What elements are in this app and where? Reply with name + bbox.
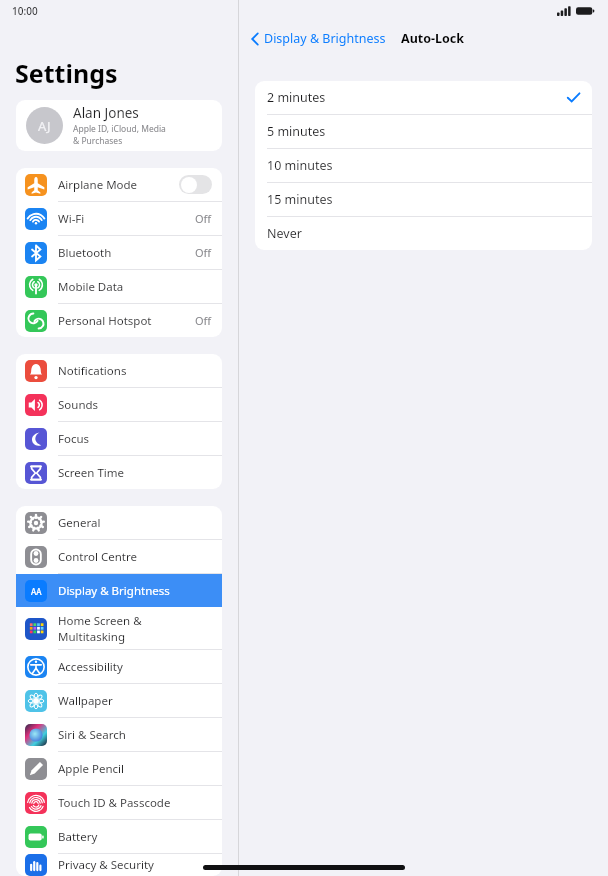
staticText: Home Screen &	[58, 613, 142, 629]
staticText: 5 minutes	[267, 123, 580, 140]
staticText: Apple ID, iCloud, Media	[73, 123, 166, 135]
button[interactable]: Notifications	[16, 354, 222, 387]
button[interactable]: General	[16, 506, 222, 539]
button[interactable]: 2 minutes	[255, 81, 592, 114]
staticText: Settings	[15, 56, 118, 90]
staticText: Display & Brightness	[58, 583, 170, 599]
staticText: & Purchases	[73, 135, 123, 147]
staticText: Display & Brightness	[264, 30, 386, 47]
button[interactable]: Wallpaper	[16, 684, 222, 717]
staticText: Notifications	[58, 363, 127, 379]
staticText: Wi-Fi	[58, 211, 85, 227]
button[interactable]: Siri & Search	[16, 718, 222, 751]
button[interactable]: Apple Pencil	[16, 752, 222, 785]
staticText: Screen Time	[58, 465, 125, 481]
staticText: 15 minutes	[267, 191, 580, 208]
button[interactable]: Home Screen &	[16, 608, 222, 649]
button[interactable]: Sounds	[16, 388, 222, 421]
staticText: Bluetooth	[58, 245, 112, 261]
button[interactable]: Privacy & Security	[16, 854, 222, 876]
staticText: Control Centre	[58, 549, 137, 565]
staticText: AJ	[38, 117, 51, 135]
staticText: General	[58, 515, 101, 531]
button[interactable]: 10 minutes	[255, 149, 592, 182]
staticText: Mobile Data	[58, 279, 124, 295]
button[interactable]: AA	[16, 574, 222, 607]
button[interactable]: Bluetooth	[16, 236, 222, 269]
staticText: Wallpaper	[58, 693, 113, 709]
staticText: Airplane Mode	[58, 177, 138, 193]
button[interactable]: Focus	[16, 422, 222, 455]
button[interactable]: 15 minutes	[255, 183, 592, 216]
staticText: 2 minutes	[267, 89, 567, 106]
staticText: Privacy & Security	[58, 857, 154, 873]
button[interactable]: Airplane Mode toggle	[179, 175, 212, 194]
button[interactable]: Touch ID & Passcode	[16, 786, 222, 819]
staticText: Accessibility	[58, 659, 123, 675]
staticText: Focus	[58, 431, 90, 447]
button[interactable]: AJ	[16, 100, 222, 151]
button[interactable]: Mobile Data	[16, 270, 222, 303]
staticText: Battery	[58, 829, 98, 845]
staticText: Personal Hotspot	[58, 313, 152, 329]
button[interactable]: Never	[255, 217, 592, 250]
button[interactable]: Control Centre	[16, 540, 222, 573]
button[interactable]: Battery	[16, 820, 222, 853]
staticText: Apple Pencil	[58, 761, 124, 777]
staticText: Multitasking	[58, 629, 126, 645]
button[interactable]: Screen Time	[16, 456, 222, 489]
staticText: Auto-Lock	[401, 30, 465, 47]
staticText: AA	[31, 586, 42, 597]
button[interactable]: Display & Brightness	[247, 26, 390, 51]
staticText: Off	[195, 313, 212, 328]
staticText: Touch ID & Passcode	[58, 795, 171, 811]
staticText: Siri & Search	[58, 727, 126, 743]
staticText: Never	[267, 225, 580, 242]
button[interactable]: Personal Hotspot	[16, 304, 222, 337]
staticText: Sounds	[58, 397, 99, 413]
staticText: 10 minutes	[267, 157, 580, 174]
button[interactable]: Airplane Mode	[16, 168, 222, 201]
button[interactable]: 5 minutes	[255, 115, 592, 148]
staticText: Off	[195, 211, 212, 226]
button[interactable]: Accessibility	[16, 650, 222, 683]
staticText: Alan Jones	[73, 104, 139, 122]
staticText: Off	[195, 245, 212, 260]
staticText: 10:00	[12, 4, 38, 18]
button[interactable]: Wi-Fi	[16, 202, 222, 235]
